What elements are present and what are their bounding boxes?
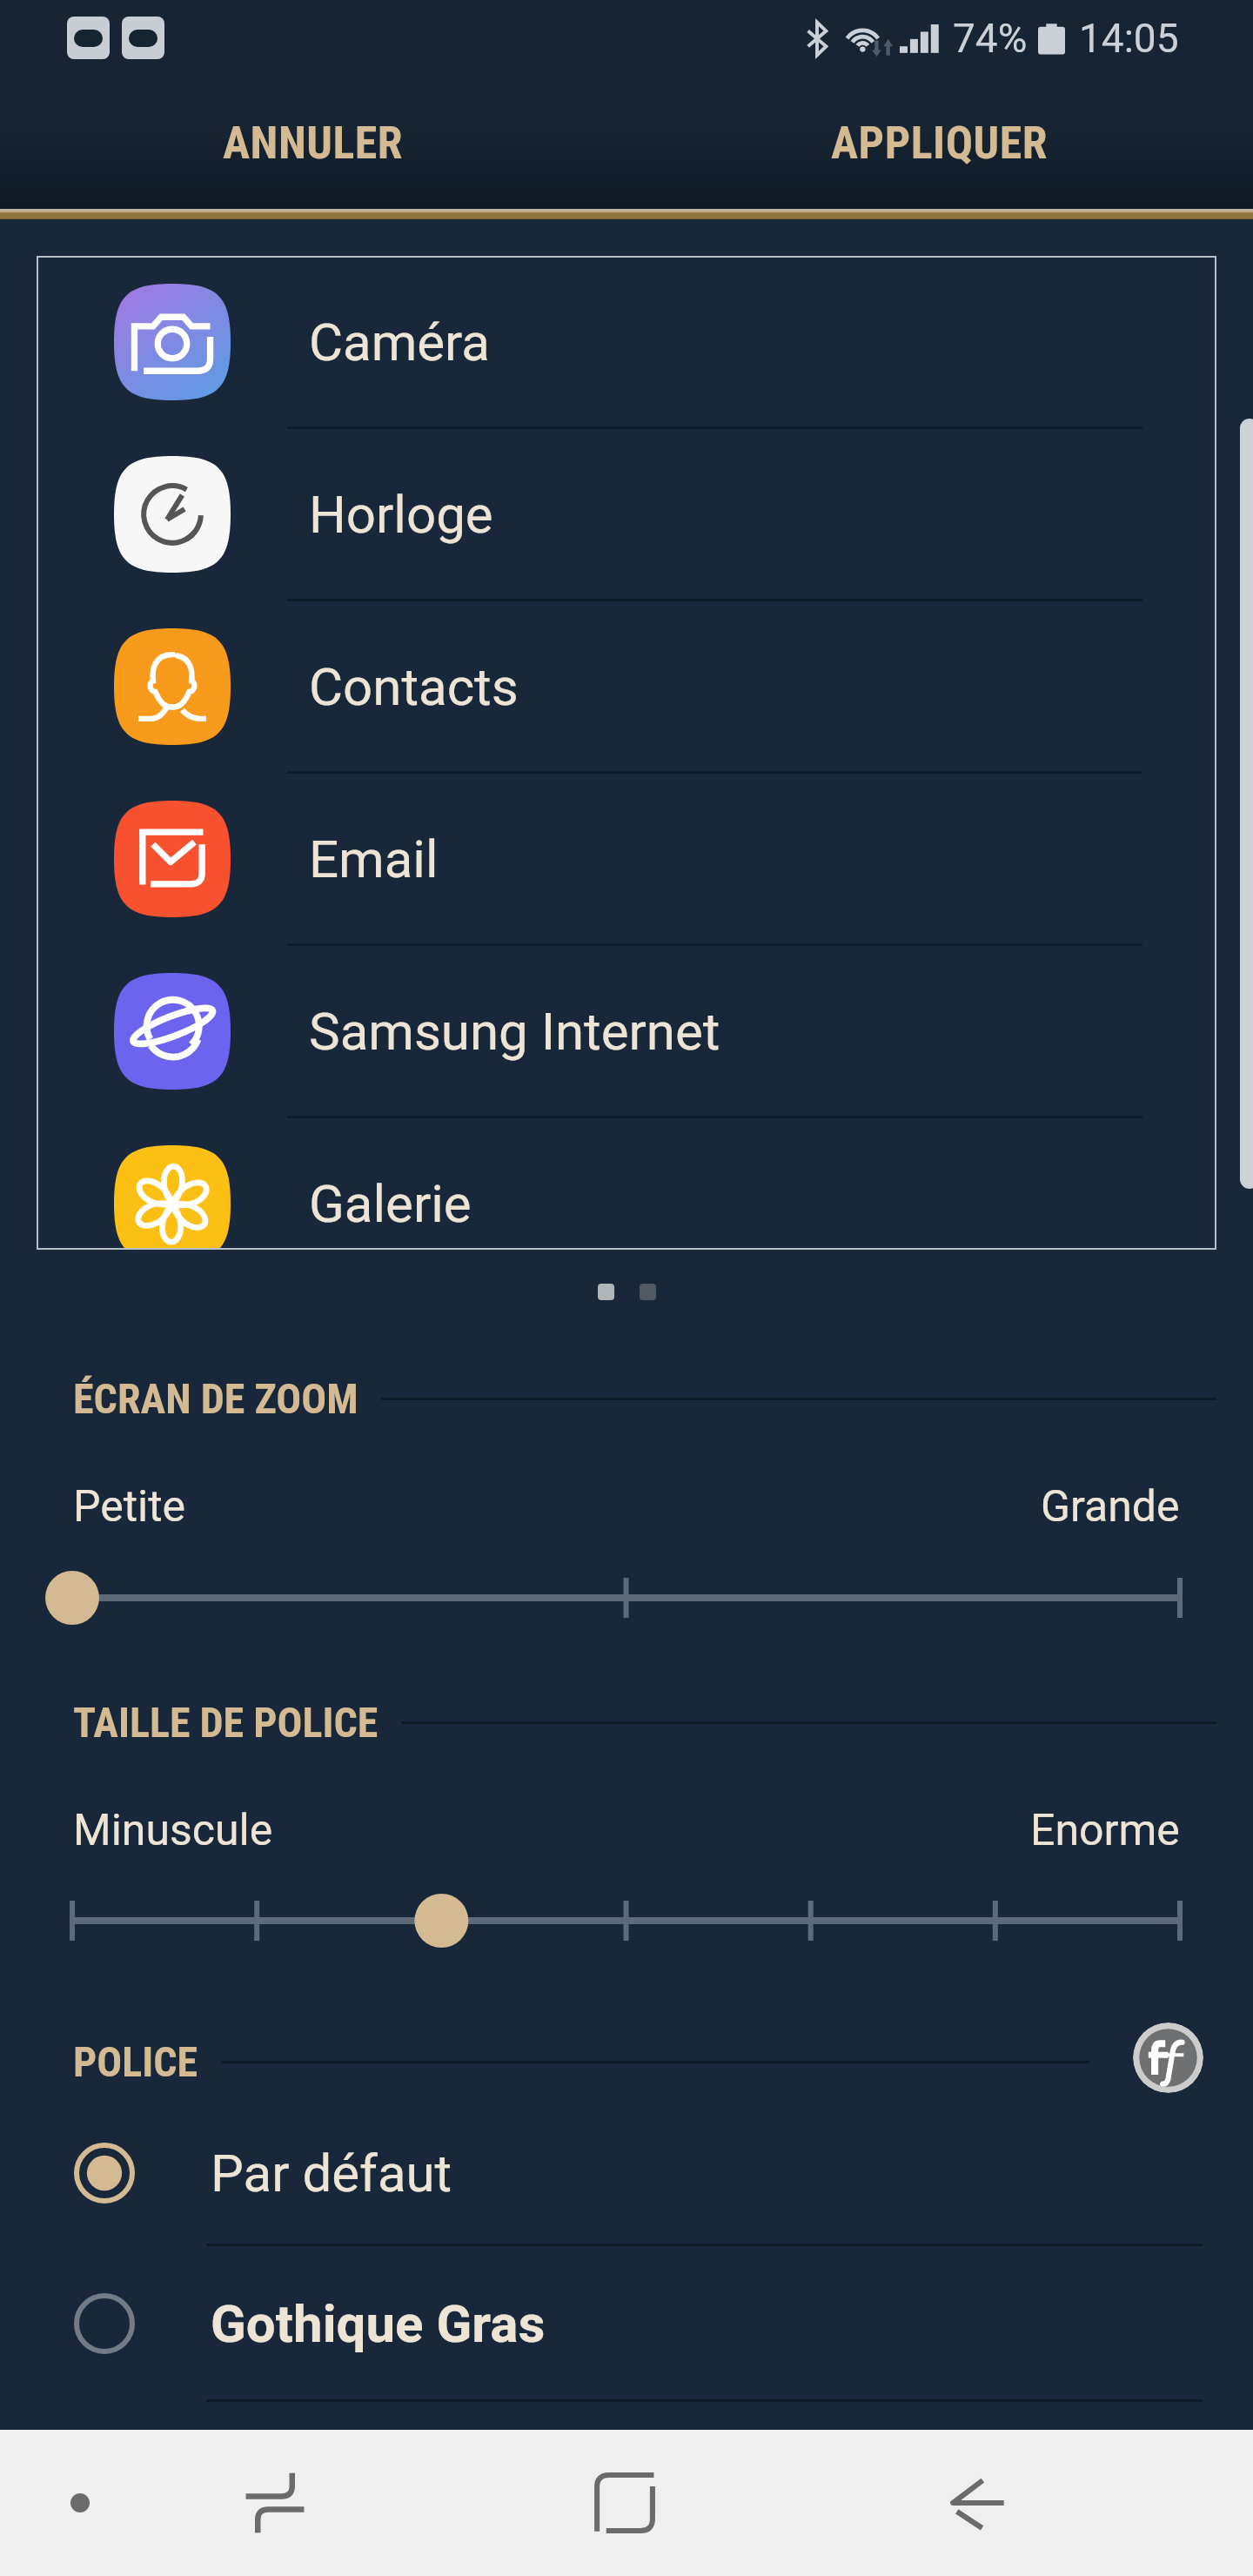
staticText: 74% bbox=[953, 15, 1028, 62]
staticText: Par défaut bbox=[211, 2143, 452, 2204]
staticText: Grande bbox=[1041, 1481, 1180, 1533]
button[interactable]: ANNULER bbox=[0, 77, 626, 209]
staticText: Galerie bbox=[309, 1173, 472, 1234]
staticText: Samsung Internet bbox=[309, 1001, 720, 1062]
staticText: TAILLE DE POLICE bbox=[73, 1698, 379, 1747]
button[interactable]: Recent apps bbox=[169, 2430, 381, 2576]
button[interactable]: Font preview bbox=[1133, 2023, 1203, 2093]
staticText: Caméra bbox=[309, 312, 490, 372]
button[interactable]: Gothique Gras bbox=[0, 2250, 1253, 2398]
staticText: Petite bbox=[73, 1481, 186, 1533]
staticText: Minuscule bbox=[73, 1805, 273, 1856]
staticText: Email bbox=[309, 828, 439, 889]
button[interactable]: Samsung Internet bbox=[37, 945, 1216, 1117]
staticText: 14:05 bbox=[1079, 15, 1179, 62]
button[interactable] bbox=[35, 1881, 1218, 1961]
button[interactable] bbox=[35, 1558, 1218, 1638]
button[interactable]: Page 1 bbox=[598, 1284, 614, 1300]
button[interactable]: Par défaut bbox=[0, 2099, 1253, 2247]
button[interactable]: Back bbox=[869, 2430, 1082, 2576]
staticText: POLICE bbox=[73, 2037, 198, 2086]
button[interactable]: Galerie bbox=[37, 1117, 1216, 1250]
staticText: ÉCRAN DE ZOOM bbox=[73, 1374, 358, 1423]
staticText: APPLIQUER bbox=[831, 117, 1049, 170]
staticText: Enorme bbox=[1030, 1805, 1180, 1856]
button[interactable]: Contacts bbox=[37, 600, 1216, 773]
staticText: ANNULER bbox=[223, 117, 404, 170]
button[interactable]: Home bbox=[519, 2430, 731, 2576]
staticText: Horloge bbox=[309, 484, 493, 545]
staticText: Gothique Gras bbox=[211, 2293, 546, 2354]
button[interactable]: Page 2 bbox=[640, 1284, 656, 1300]
button[interactable]: Horloge bbox=[37, 428, 1216, 600]
button[interactable]: Caméra bbox=[37, 256, 1216, 428]
button[interactable]: APPLIQUER bbox=[626, 77, 1253, 209]
button[interactable]: Email bbox=[37, 773, 1216, 945]
staticText: Contacts bbox=[309, 656, 519, 717]
